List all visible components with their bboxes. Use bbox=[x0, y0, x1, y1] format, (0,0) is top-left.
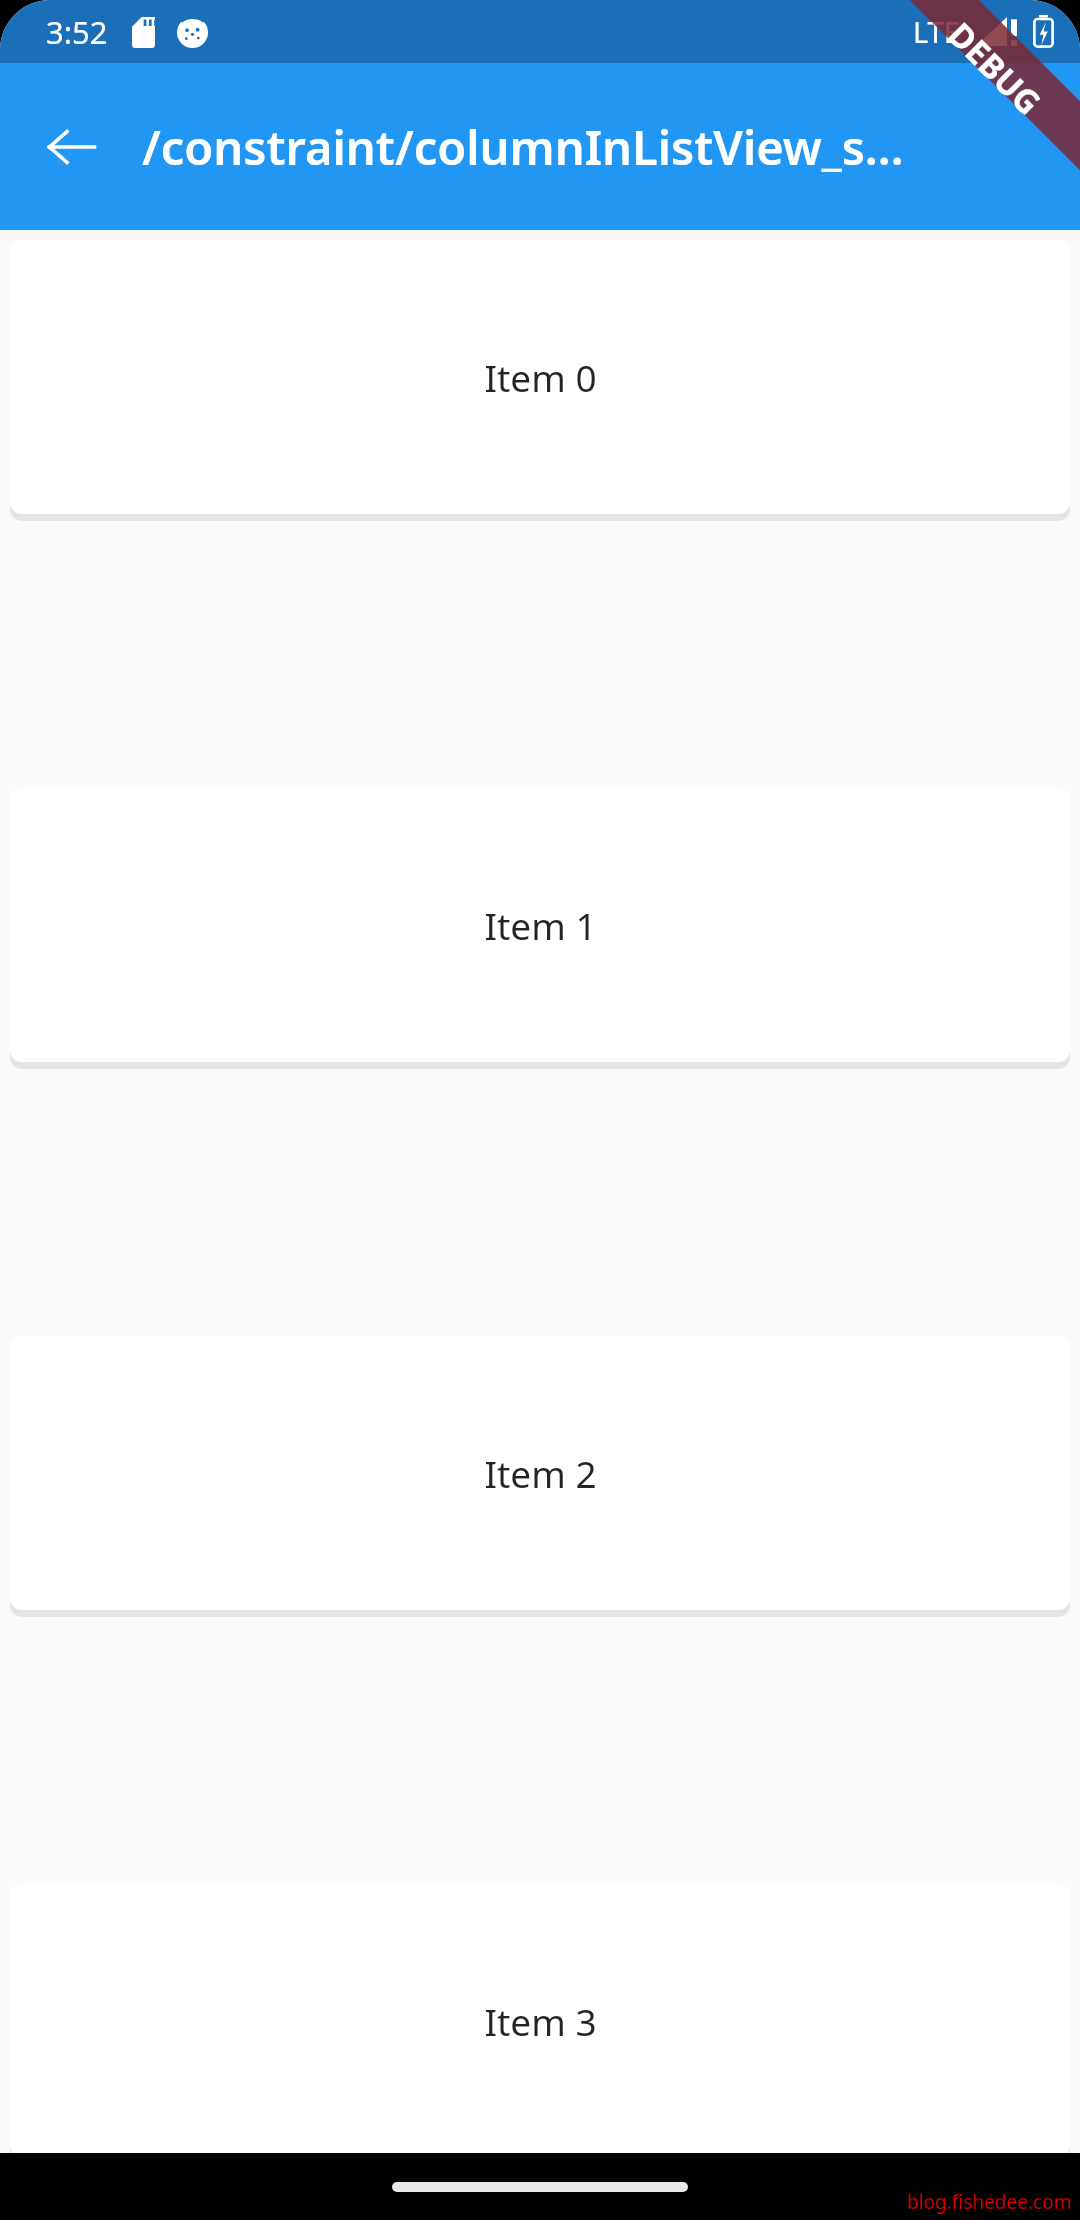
staticText: Item 3 bbox=[484, 1996, 597, 2046]
button[interactable]: Item 1 bbox=[10, 788, 1070, 1062]
staticText: blog.fishedee.com bbox=[907, 2189, 1072, 2215]
button[interactable]: Item 0 bbox=[10, 240, 1070, 514]
button[interactable]: Item 3 bbox=[10, 1884, 1070, 2153]
staticText: 3:52 bbox=[46, 11, 108, 53]
staticText: Item 0 bbox=[484, 352, 597, 402]
staticText: Item 1 bbox=[484, 900, 597, 950]
staticText: LTE bbox=[913, 12, 960, 51]
staticText: /constraint/columnInListView_s… bbox=[142, 115, 904, 179]
staticText: Item 2 bbox=[484, 1448, 597, 1498]
button[interactable]: Back bbox=[24, 99, 120, 195]
staticText: DEBUG bbox=[939, 12, 1051, 125]
button[interactable]: Item 2 bbox=[10, 1336, 1070, 1610]
button[interactable]: Home bbox=[392, 2182, 688, 2192]
